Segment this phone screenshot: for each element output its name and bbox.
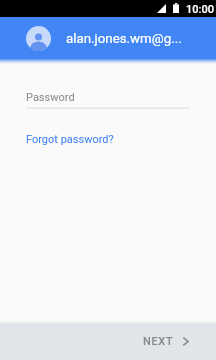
button[interactable]: Account bbox=[0, 0, 216, 59]
staticText: alan.jones.wm@g... bbox=[66, 31, 182, 47]
staticText: Password bbox=[26, 91, 75, 104]
button[interactable]: Forgot password? bbox=[19, 129, 121, 150]
other: Account bbox=[26, 26, 51, 51]
staticText: 10:00 bbox=[186, 3, 214, 16]
button[interactable]: NEXT bbox=[138, 329, 194, 354]
button[interactable]: Password bbox=[0, 86, 216, 114]
staticText: Forgot password? bbox=[26, 133, 114, 146]
staticText: NEXT bbox=[143, 335, 174, 348]
